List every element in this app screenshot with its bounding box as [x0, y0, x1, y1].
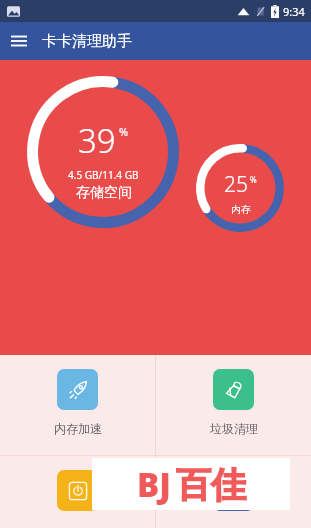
staticText: 39: [78, 118, 116, 163]
staticText: 内存: [231, 203, 251, 216]
button[interactable]: 内存加速: [0, 355, 155, 455]
staticText: BJ: [137, 462, 171, 507]
button[interactable]: [0, 456, 155, 528]
staticText: 25: [224, 170, 248, 199]
staticText: 存储空间: [76, 184, 132, 202]
staticText: %: [250, 174, 257, 185]
button[interactable]: 垃圾清理: [156, 355, 311, 455]
button[interactable]: 存储空间: [27, 76, 179, 228]
button[interactable]: Menu: [0, 22, 38, 60]
staticText: 9:34: [283, 4, 305, 19]
staticText: %: [119, 124, 129, 139]
staticText: 垃圾清理: [210, 421, 258, 436]
button[interactable]: [156, 456, 311, 528]
staticText: 内存加速: [54, 421, 102, 436]
staticText: 百佳: [176, 463, 246, 507]
staticText: 卡卡清理助手: [42, 32, 132, 51]
staticText: 4.5 GB/11.4 GB: [68, 168, 139, 182]
button[interactable]: 内存: [196, 144, 284, 232]
